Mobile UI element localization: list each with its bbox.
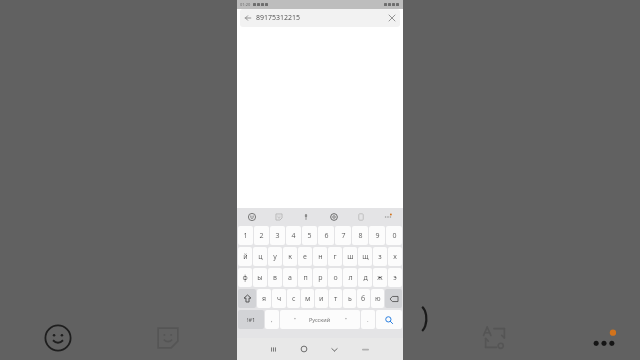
button[interactable]: More xyxy=(381,210,395,224)
staticText: • xyxy=(294,316,296,323)
button[interactable]: Clear xyxy=(384,10,400,26)
button[interactable]: ц xyxy=(253,247,267,266)
button[interactable]: ф xyxy=(238,268,252,287)
staticText: ч xyxy=(277,294,282,304)
button[interactable]: 4 xyxy=(286,226,301,245)
staticText: 3 xyxy=(275,231,280,241)
button[interactable]: , xyxy=(265,310,279,329)
button[interactable]: л xyxy=(343,268,357,287)
button[interactable]: х xyxy=(388,247,402,266)
button[interactable]: п xyxy=(298,268,312,287)
button[interactable]: б xyxy=(357,289,370,308)
button[interactable]: Hide keyboard xyxy=(319,338,350,360)
staticText: 01:20 xyxy=(240,2,251,7)
staticText: 7 xyxy=(341,231,346,241)
button[interactable]: с xyxy=(287,289,300,308)
staticText: н xyxy=(318,252,323,262)
button[interactable]: 8 xyxy=(352,226,368,245)
button[interactable]: р xyxy=(313,268,327,287)
button[interactable]: Back xyxy=(240,10,256,26)
button[interactable]: д xyxy=(358,268,372,287)
button[interactable]: ш xyxy=(343,247,357,266)
button[interactable]: More options xyxy=(584,320,624,360)
button[interactable]: ж xyxy=(373,268,387,287)
button[interactable]: Home xyxy=(288,338,319,360)
staticText: 0 xyxy=(392,231,397,241)
staticText: р xyxy=(318,273,323,283)
button[interactable]: Stickers xyxy=(150,320,186,356)
button[interactable]: я xyxy=(257,289,271,308)
button[interactable]: Search xyxy=(376,310,402,329)
button[interactable]: м xyxy=(301,289,314,308)
staticText: з xyxy=(378,252,382,262)
button[interactable]: т xyxy=(329,289,342,308)
staticText: э xyxy=(393,273,397,283)
staticText: ы xyxy=(257,273,263,283)
button[interactable]: Back xyxy=(240,9,400,27)
button[interactable]: !#1 xyxy=(238,310,264,329)
staticText: . xyxy=(367,316,369,324)
button[interactable]: в xyxy=(268,268,282,287)
button[interactable]: ю xyxy=(371,289,384,308)
button[interactable]: э xyxy=(388,268,402,287)
button[interactable]: 9 xyxy=(369,226,385,245)
button[interactable]: Sticker xyxy=(272,210,286,224)
button[interactable]: о xyxy=(328,268,342,287)
staticText: л xyxy=(348,273,353,283)
staticText: ю xyxy=(375,294,381,304)
staticText: а xyxy=(288,273,292,283)
staticText: к xyxy=(288,252,292,262)
button[interactable]: Settings xyxy=(327,210,341,224)
button[interactable]: Voice input xyxy=(299,210,313,224)
staticText: 4 xyxy=(291,231,296,241)
staticText: и xyxy=(319,294,324,304)
button[interactable]: Translate xyxy=(477,320,513,356)
button[interactable]: 1 xyxy=(238,226,253,245)
button[interactable]: е xyxy=(298,247,312,266)
button[interactable]: н xyxy=(313,247,327,266)
button[interactable]: • xyxy=(280,310,360,329)
staticText: 6 xyxy=(324,231,329,241)
staticText: п xyxy=(303,273,308,283)
button[interactable]: з xyxy=(373,247,387,266)
staticText: д xyxy=(363,273,368,283)
staticText: !#1 xyxy=(247,316,256,323)
staticText: г xyxy=(333,252,337,262)
button[interactable]: Emoji xyxy=(40,320,76,356)
staticText: й xyxy=(243,252,248,262)
button[interactable]: 5 xyxy=(302,226,317,245)
button[interactable]: . xyxy=(361,310,375,329)
button[interactable]: 0 xyxy=(386,226,402,245)
button[interactable]: 7 xyxy=(335,226,351,245)
button[interactable]: й xyxy=(238,247,252,266)
staticText: ж xyxy=(377,273,383,283)
staticText: м xyxy=(305,294,311,304)
staticText: т xyxy=(334,294,338,304)
button[interactable]: у xyxy=(268,247,282,266)
staticText: 2 xyxy=(259,231,264,241)
staticText: 1 xyxy=(243,231,248,241)
button[interactable]: Shift xyxy=(238,289,256,308)
button[interactable]: и xyxy=(315,289,328,308)
button[interactable]: 3 xyxy=(270,226,285,245)
button[interactable]: Clipboard xyxy=(354,210,368,224)
button[interactable]: г xyxy=(328,247,342,266)
button[interactable]: к xyxy=(283,247,297,266)
button[interactable]: ь xyxy=(343,289,356,308)
staticText: о xyxy=(333,273,338,283)
button[interactable]: Emoji xyxy=(245,210,259,224)
button[interactable]: а xyxy=(283,268,297,287)
button[interactable]: 6 xyxy=(318,226,334,245)
button[interactable]: Backspace xyxy=(385,289,402,308)
staticText: в xyxy=(273,273,277,283)
button[interactable]: Recents xyxy=(258,338,288,360)
button[interactable]: Keyboard xyxy=(350,338,381,360)
button[interactable]: 2 xyxy=(254,226,269,245)
button[interactable]: щ xyxy=(358,247,372,266)
button[interactable]: ч xyxy=(272,289,286,308)
staticText: ф xyxy=(242,273,248,283)
staticText: Русский xyxy=(309,316,331,323)
staticText: у xyxy=(273,252,277,262)
button[interactable]: ы xyxy=(253,268,267,287)
staticText: е xyxy=(303,252,307,262)
